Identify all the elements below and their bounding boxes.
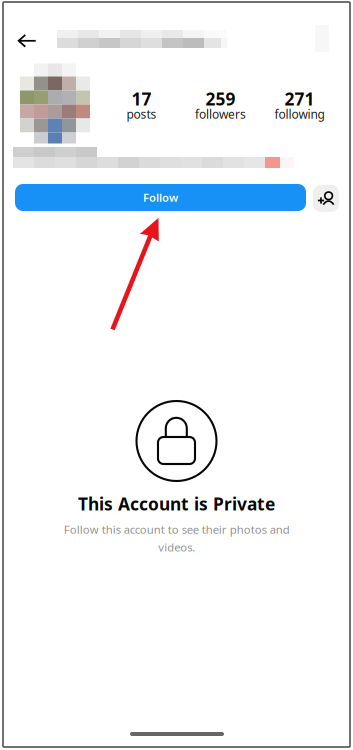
staticText: Follow: [143, 190, 178, 205]
button[interactable]: Back: [10, 24, 44, 58]
staticText: 259: [205, 87, 235, 111]
staticText: Follow this account to see their photos …: [63, 522, 289, 555]
staticText: 271: [284, 87, 314, 111]
button[interactable]: Follow: [15, 184, 306, 211]
staticText: 17: [131, 87, 151, 111]
staticText: This Account is Private: [78, 492, 275, 516]
button[interactable]: Discover people: [313, 185, 339, 212]
staticText: posts: [126, 106, 156, 122]
staticText: following: [274, 106, 324, 122]
staticText: followers: [195, 106, 246, 122]
